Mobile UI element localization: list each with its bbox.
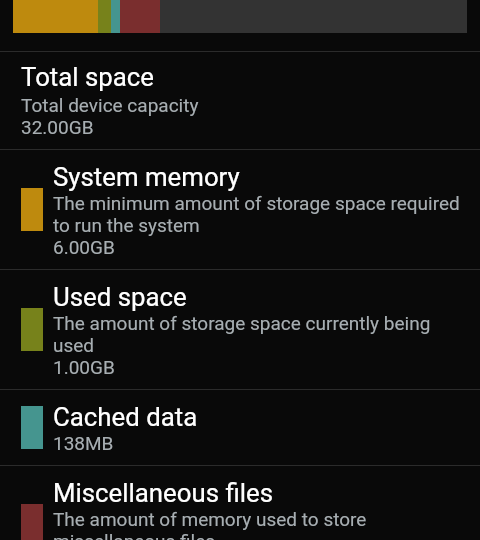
staticText: 1.00GB (53, 357, 115, 379)
staticText: 6.00GB (53, 237, 115, 259)
staticText: The minimum amount of storage space requ… (53, 193, 462, 237)
staticText: 32.00GB (21, 117, 94, 139)
button[interactable]: System memory (0, 150, 480, 269)
staticText: The amount of memory used to store misce… (53, 509, 462, 540)
button[interactable]: Miscellaneous files (0, 466, 480, 540)
staticText: Used space (53, 283, 187, 312)
button[interactable]: Total space (0, 52, 480, 149)
staticText: Miscellaneous files (53, 479, 274, 508)
staticText: 138MB (53, 433, 114, 455)
staticText: Cached data (53, 403, 198, 432)
staticText: Total space (21, 63, 155, 92)
staticText: The amount of storage space currently be… (53, 313, 462, 357)
staticText: Total device capacity (21, 95, 199, 117)
button[interactable]: Cached data (0, 390, 480, 465)
button[interactable]: Used space (0, 270, 480, 389)
staticText: System memory (53, 163, 240, 192)
